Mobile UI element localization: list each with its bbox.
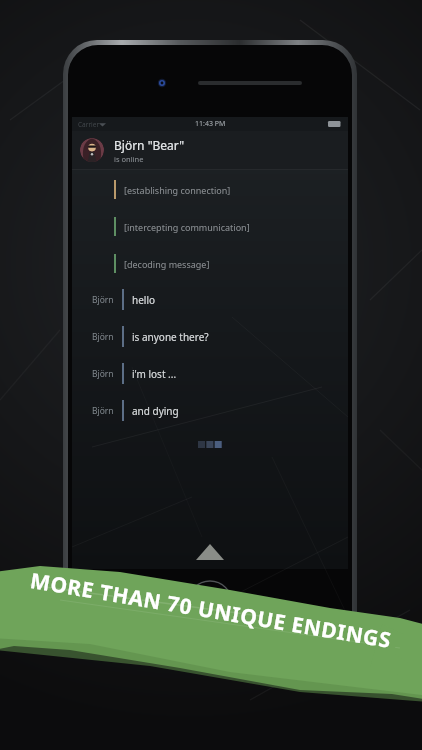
button[interactable]: Björn xyxy=(72,363,348,384)
staticText: Björn xyxy=(92,368,114,380)
staticText: MORE THAN 70 UNIQUE ENDINGS xyxy=(28,566,394,655)
button[interactable]: [intercepting communication] xyxy=(72,217,348,236)
button[interactable]: Contact avatar xyxy=(72,131,348,169)
other: Typing indicator xyxy=(198,441,222,448)
staticText: [establishing connection] xyxy=(124,184,231,196)
staticText: Björn xyxy=(92,331,114,343)
staticText: hello xyxy=(132,293,156,307)
other: Contact avatar xyxy=(80,138,104,162)
staticText: [intercepting communication] xyxy=(124,221,250,233)
button[interactable]: [decoding message] xyxy=(72,254,348,273)
staticText: 11:43 PM xyxy=(195,119,226,129)
staticText: [decoding message] xyxy=(124,258,210,270)
staticText: i'm lost ... xyxy=(132,367,177,381)
staticText: Björn xyxy=(92,294,114,306)
button[interactable]: Scroll down xyxy=(72,541,348,563)
button[interactable]: [establishing connection] xyxy=(72,180,348,199)
staticText: Carrier xyxy=(78,120,100,129)
staticText: Björn xyxy=(92,405,114,417)
staticText: is anyone there? xyxy=(132,330,209,344)
button[interactable]: Björn xyxy=(72,289,348,310)
staticText: Björn "Bear" xyxy=(114,137,185,153)
staticText: and dying xyxy=(132,404,179,418)
button[interactable]: Björn xyxy=(72,400,348,421)
button[interactable]: Björn xyxy=(72,326,348,347)
staticText: is online xyxy=(114,154,144,164)
